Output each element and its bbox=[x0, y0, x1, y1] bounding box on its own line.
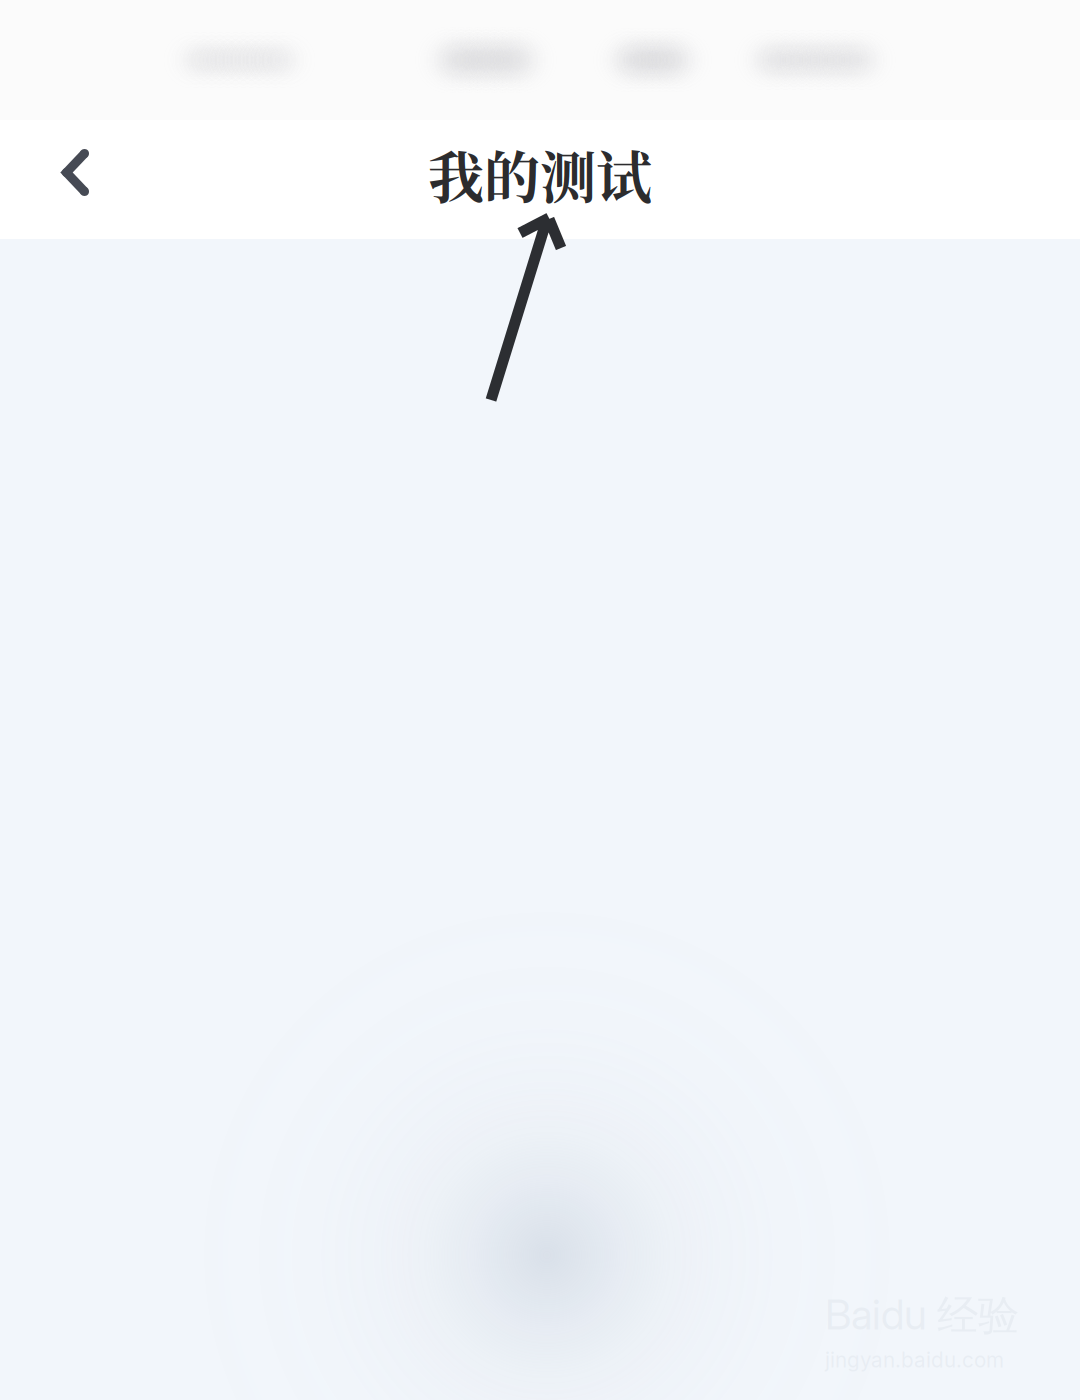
staticText: jingyan.baidu.com bbox=[825, 1347, 1004, 1372]
button[interactable]: Back bbox=[0, 120, 151, 239]
staticText: Baidu 经验 bbox=[825, 1289, 1019, 1342]
staticText: 我的测试 bbox=[428, 133, 652, 214]
